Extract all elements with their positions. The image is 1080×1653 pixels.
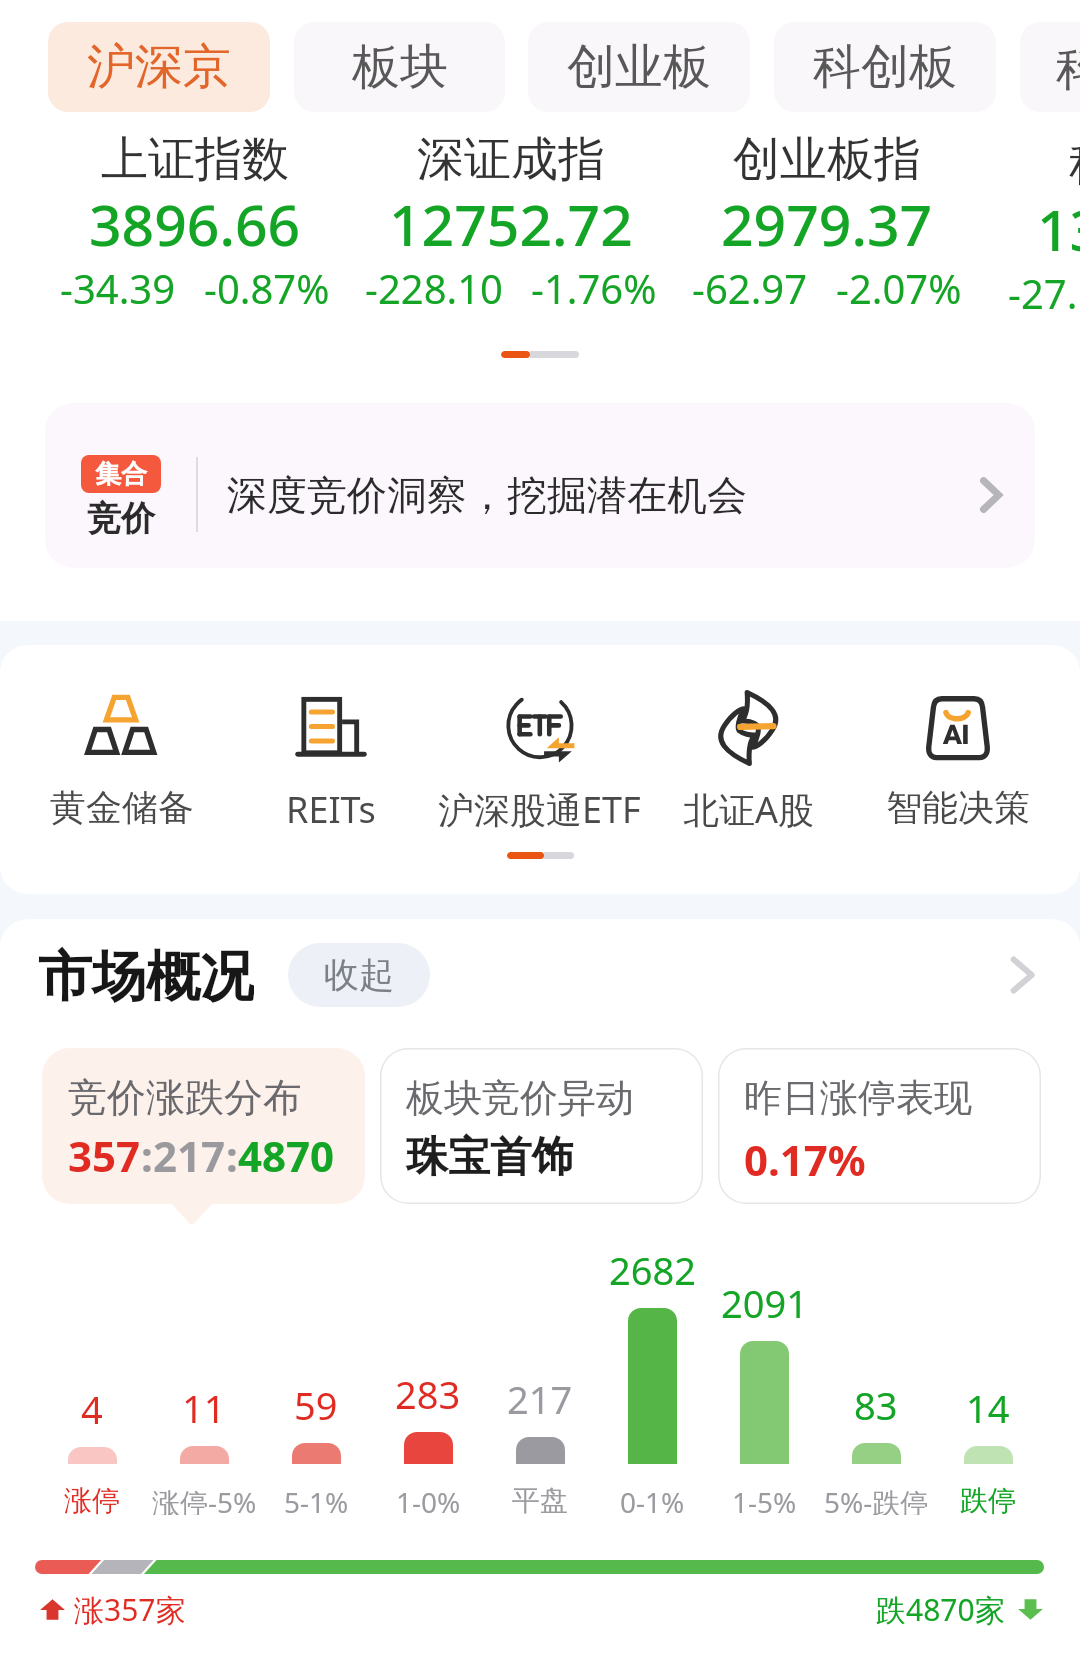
button[interactable]: 更多: [1000, 953, 1044, 997]
staticText: 竞价涨跌分布: [68, 1073, 302, 1122]
staticText: -1.76%: [531, 261, 657, 315]
staticText: :: [226, 1127, 238, 1184]
button[interactable]: 竞价涨跌分布: [42, 1048, 365, 1204]
staticText: 集合: [95, 458, 147, 491]
staticText: 涨357家: [74, 1589, 186, 1630]
staticText: 科创50: [1069, 130, 1080, 194]
staticText: 14: [966, 1382, 1010, 1434]
staticText: 涨停: [64, 1483, 120, 1515]
staticText: 创业板: [567, 37, 711, 97]
staticText: 0.17%: [744, 1131, 866, 1188]
button[interactable]: 创业板指: [669, 130, 985, 315]
staticText: -2.07%: [836, 261, 962, 315]
staticText: 217: [507, 1373, 573, 1425]
staticText: 1-0%: [396, 1483, 461, 1515]
button[interactable]: 沪深京: [48, 22, 270, 112]
staticText: 创业板指: [733, 130, 921, 189]
button[interactable]: 沪深股通ETF: [435, 691, 644, 834]
staticText: -228.10: [365, 261, 503, 315]
staticText: 智能决策: [886, 785, 1030, 830]
staticText: 2091: [721, 1277, 808, 1329]
staticText: 沪深京: [87, 37, 231, 97]
staticText: 5-1%: [284, 1483, 349, 1515]
staticText: 昨日涨停表现: [744, 1074, 972, 1122]
button[interactable]: 集合: [45, 403, 1035, 568]
button[interactable]: 科创50: [985, 130, 1080, 315]
staticText: -27.10: [1008, 266, 1080, 315]
button[interactable]: 创业板: [528, 22, 750, 112]
staticText: 357: [68, 1127, 141, 1184]
staticText: 11: [182, 1382, 226, 1434]
staticText: 上证指数: [101, 130, 289, 189]
button[interactable]: 智能决策: [853, 691, 1062, 830]
staticText: 1-5%: [732, 1483, 797, 1515]
staticText: 1330.12: [1037, 190, 1080, 268]
staticText: 平盘: [512, 1483, 568, 1515]
staticText: 科创50: [1056, 34, 1080, 100]
staticText: -0.87%: [204, 261, 330, 315]
staticText: 北证A股: [683, 785, 815, 834]
staticText: 2979.37: [721, 185, 933, 263]
staticText: 板块竞价异动: [406, 1074, 634, 1122]
button[interactable]: REITs: [226, 691, 435, 834]
button[interactable]: 昨日涨停表现: [718, 1048, 1041, 1204]
staticText: 黄金储备: [50, 785, 194, 830]
staticText: 深度竞价洞察，挖掘潜在机会: [227, 470, 747, 520]
staticText: 涨停-5%: [152, 1483, 257, 1515]
staticText: 跌停: [960, 1483, 1016, 1515]
button[interactable]: 黄金储备: [18, 691, 226, 830]
staticText: :: [141, 1127, 153, 1184]
staticText: 深证成指: [417, 130, 605, 189]
staticText: REITs: [286, 785, 376, 834]
button[interactable]: 深证成指: [353, 130, 669, 315]
button[interactable]: 板块: [294, 22, 505, 112]
staticText: 283: [395, 1368, 461, 1420]
staticText: 科创板: [813, 37, 957, 97]
staticText: 珠宝首饰: [406, 1131, 574, 1184]
staticText: 4: [81, 1383, 103, 1435]
staticText: -62.97: [692, 261, 808, 315]
staticText: 83: [854, 1379, 898, 1431]
staticText: 59: [294, 1379, 338, 1431]
staticText: 竞价: [87, 497, 155, 540]
staticText: 3896.66: [89, 185, 301, 263]
staticText: 0-1%: [620, 1483, 685, 1515]
staticText: 市场概况: [38, 943, 254, 1007]
button[interactable]: 板块竞价异动: [380, 1048, 703, 1204]
staticText: 5%-跌停: [824, 1483, 929, 1515]
button[interactable]: 收起: [288, 943, 430, 1007]
staticText: 2682: [609, 1244, 696, 1296]
staticText: 4870: [238, 1127, 335, 1184]
staticText: 跌4870家: [876, 1589, 1005, 1630]
staticText: 收起: [324, 953, 394, 997]
button[interactable]: 北证A股: [644, 691, 853, 834]
staticText: 沪深股通ETF: [438, 785, 641, 834]
staticText: 板块: [352, 37, 448, 97]
button[interactable]: 上证指数: [37, 130, 353, 315]
button[interactable]: 科创板: [774, 22, 996, 112]
staticText: 12752.72: [389, 185, 633, 263]
staticText: -34.39: [60, 261, 176, 315]
staticText: 217: [153, 1127, 226, 1184]
button[interactable]: 科创50: [1020, 22, 1080, 112]
